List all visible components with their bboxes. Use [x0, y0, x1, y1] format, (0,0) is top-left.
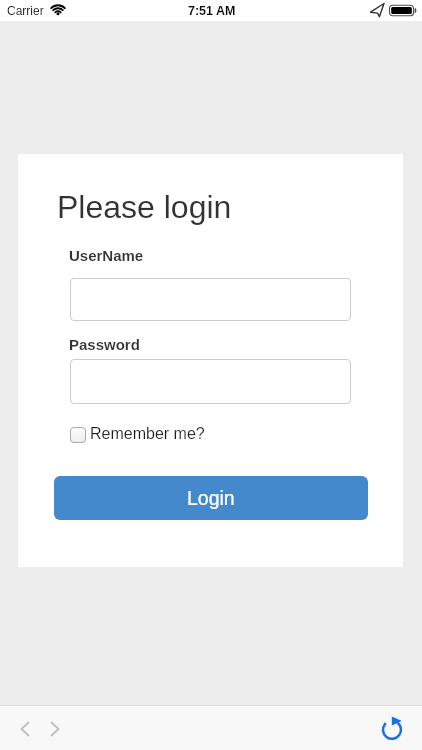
staticText: Password	[69, 336, 140, 353]
staticText: Login	[187, 487, 235, 509]
staticText: Remember me?	[90, 425, 205, 443]
staticText: Please login	[57, 189, 232, 225]
staticText: UserName	[69, 247, 144, 264]
staticText: Carrier	[7, 4, 44, 17]
staticText: 7:51 AM	[188, 4, 236, 18]
